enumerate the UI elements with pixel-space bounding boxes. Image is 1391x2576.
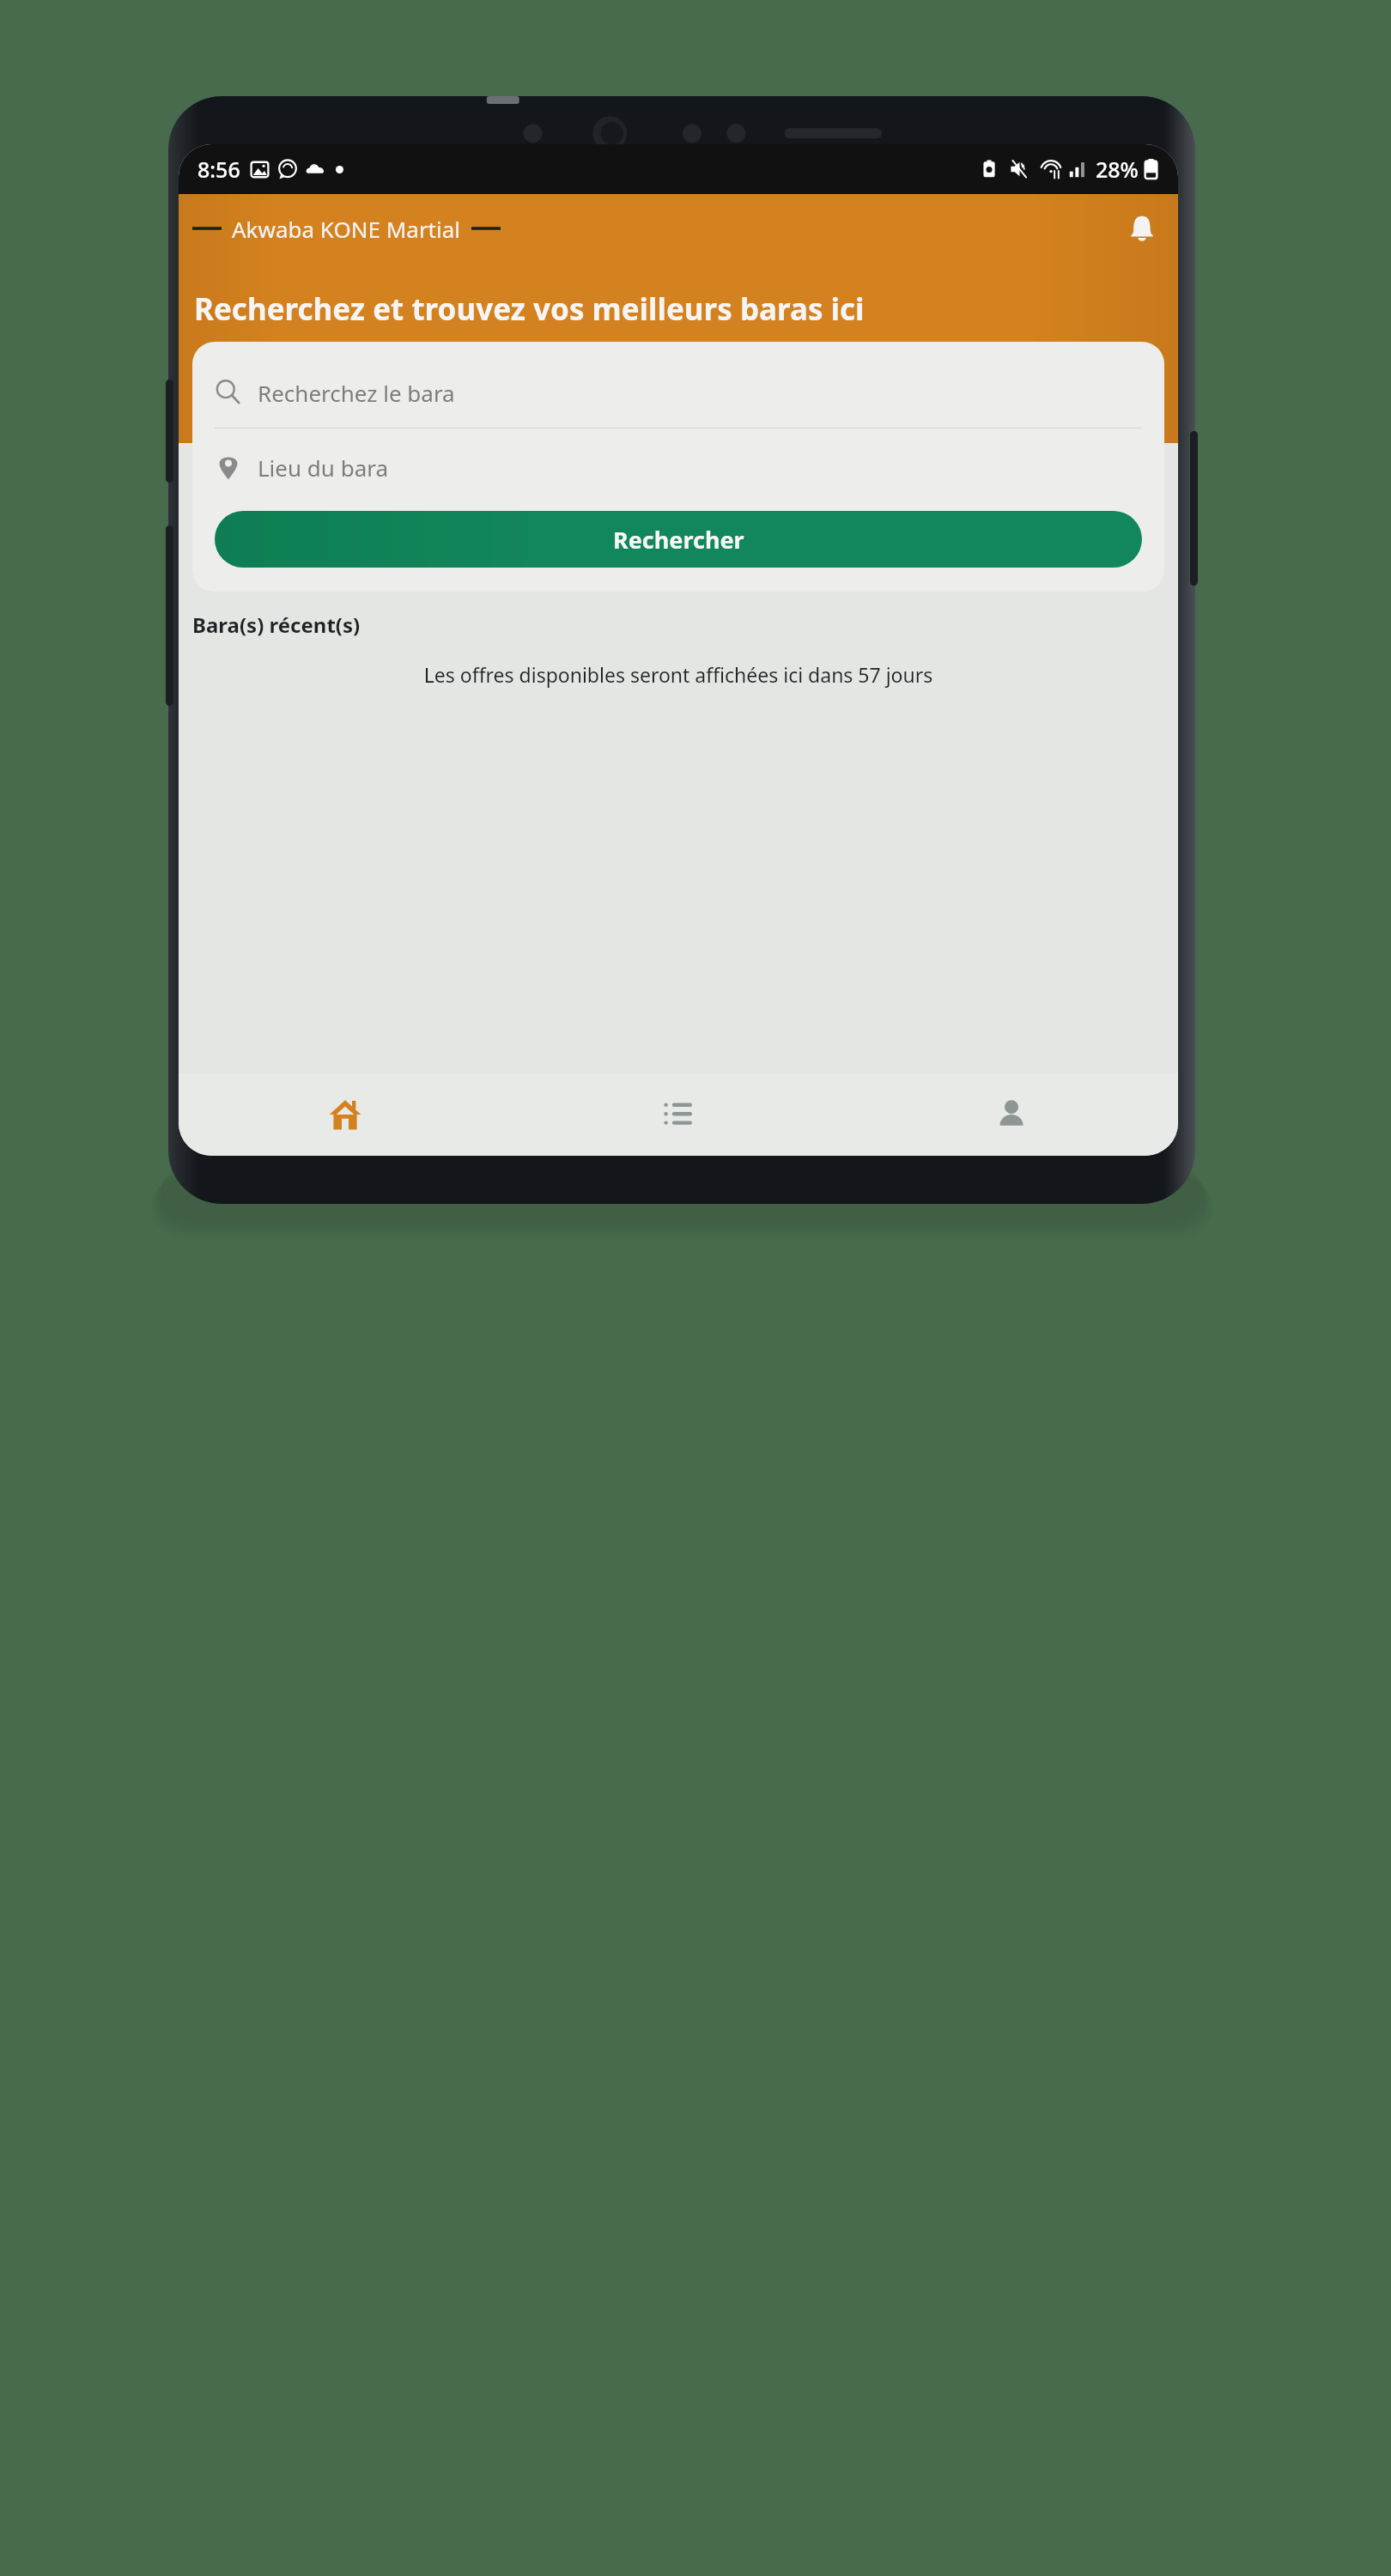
staticText: Bara(s) récent(s) (192, 611, 361, 639)
button[interactable]: Profil (845, 1073, 1178, 1156)
staticText: 8:56 (197, 155, 240, 184)
button[interactable]: Lieu du bara (215, 444, 1142, 490)
button[interactable]: Accueil (179, 1073, 512, 1156)
button[interactable]: Liste (512, 1073, 845, 1156)
staticText: 28% (1096, 155, 1139, 184)
button[interactable]: Notifications (1120, 206, 1164, 251)
button[interactable]: Recherchez le bara (215, 368, 1142, 417)
staticText: Lieu du bara (258, 453, 389, 483)
staticText: Recherchez et trouvez vos meilleurs bara… (194, 289, 865, 330)
staticText: Recherchez le bara (258, 378, 455, 408)
button[interactable]: Rechercher (215, 511, 1142, 568)
staticText: Akwaba KONE Martial (232, 214, 461, 244)
staticText: Les offres disponibles seront affichées … (196, 661, 1161, 688)
staticText: Rechercher (613, 524, 744, 556)
